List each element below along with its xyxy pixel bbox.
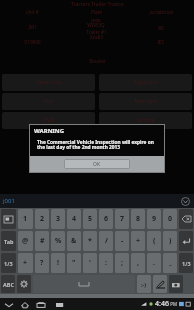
button[interactable]: & (67, 231, 81, 251)
staticText: 3 (56, 214, 61, 224)
button[interactable]: 3 (51, 209, 65, 229)
staticText: - (121, 236, 124, 246)
button[interactable] (17, 275, 31, 293)
staticText: " (72, 258, 76, 268)
staticText: DVIR (43, 117, 55, 124)
button[interactable]: 9 (147, 209, 161, 229)
staticText: 7 (120, 214, 125, 224)
button[interactable]: 6 (99, 209, 113, 229)
staticText: ABC (3, 281, 14, 288)
button[interactable]: / (99, 231, 113, 251)
button[interactable]: 2 (35, 209, 49, 229)
staticText: : (105, 258, 107, 268)
staticText: ; (121, 258, 123, 268)
staticText: 8 (136, 214, 141, 224)
staticText: + (136, 236, 141, 246)
button[interactable]: . (147, 253, 161, 273)
button[interactable]: ; (115, 253, 129, 273)
button[interactable]: 5 (83, 209, 97, 229)
button[interactable]: ABC (1, 275, 15, 293)
staticText: Jeep (91, 17, 101, 23)
staticText: 1/3 (4, 260, 13, 267)
button[interactable]: Tab (1, 231, 16, 251)
button[interactable]: # (35, 231, 49, 251)
button[interactable]: : (99, 253, 113, 273)
button[interactable]: 0 (163, 209, 177, 229)
staticText: PM (169, 301, 177, 307)
button[interactable]: - (115, 231, 129, 251)
button[interactable]: ' (83, 253, 97, 273)
button[interactable] (169, 275, 183, 293)
button[interactable]: :-) (137, 275, 151, 293)
staticText: 4:46 (155, 299, 169, 309)
staticText: @ (22, 236, 29, 246)
button[interactable]: , (131, 253, 145, 273)
staticText: % (55, 236, 62, 246)
staticText: ) (169, 236, 172, 246)
button[interactable]: Settings (99, 112, 192, 129)
button[interactable] (179, 231, 193, 251)
button[interactable]: 8 (131, 209, 145, 229)
button[interactable]: 7 (115, 209, 129, 229)
button[interactable]: DVIR (2, 112, 95, 129)
staticText: j001 (3, 197, 15, 205)
staticText: * (88, 236, 92, 246)
button[interactable]: ) (163, 231, 177, 251)
staticText: WI953Q (87, 22, 105, 28)
button[interactable]: ! (51, 253, 65, 273)
button[interactable]: Hide keyboard (181, 197, 190, 206)
button[interactable]: Home (19, 299, 30, 310)
button[interactable]: 1 (18, 209, 33, 229)
button[interactable] (1, 209, 16, 229)
button[interactable]: + (131, 231, 145, 251)
button[interactable]: 4 (67, 209, 81, 229)
button[interactable]: ? (35, 253, 49, 273)
staticText: & (71, 236, 77, 246)
button[interactable] (33, 275, 135, 293)
staticText: 4 (72, 214, 77, 224)
button[interactable] (153, 275, 167, 293)
staticText: # (40, 236, 45, 246)
button[interactable]: ( (147, 231, 161, 251)
staticText: 5 (88, 214, 93, 224)
staticText: Driver Log (36, 79, 61, 86)
staticText: Tractors Trailer Tractor (71, 1, 124, 8)
staticText: JM1 (28, 24, 37, 30)
staticText: 9 (152, 214, 157, 224)
staticText: Inspection (133, 79, 158, 86)
staticText: , (137, 258, 139, 268)
staticText: ! (57, 258, 59, 268)
staticText: WARNING (34, 127, 65, 135)
staticText: OK (93, 161, 101, 168)
button[interactable]: OK (64, 159, 130, 169)
staticText: ' (89, 258, 91, 268)
staticText: 1/3 (182, 260, 191, 267)
button[interactable] (179, 209, 193, 229)
button[interactable]: _ (163, 253, 177, 273)
staticText: + (23, 258, 28, 268)
staticText: Bouvier (89, 58, 106, 64)
button[interactable]: 1/3 (179, 253, 193, 273)
staticText: Tab (4, 238, 14, 245)
button[interactable]: 1/3 (1, 253, 16, 273)
staticText: _ (169, 258, 172, 268)
button[interactable]: * (83, 231, 97, 251)
staticText: ? (40, 258, 44, 268)
button[interactable]: Recents (35, 299, 46, 310)
button[interactable]: Menu (54, 299, 65, 310)
button[interactable]: @ (18, 231, 33, 251)
button[interactable]: % (51, 231, 65, 251)
staticText: Fuel (44, 98, 54, 105)
staticText: Settings (136, 117, 156, 124)
button[interactable]: Back (3, 299, 14, 310)
staticText: WI (158, 25, 164, 31)
button[interactable]: " (67, 253, 81, 273)
staticText: The Commercial Vehicle Inspection will e… (37, 139, 158, 151)
staticText: / (105, 236, 108, 246)
button[interactable]: + (18, 253, 33, 273)
